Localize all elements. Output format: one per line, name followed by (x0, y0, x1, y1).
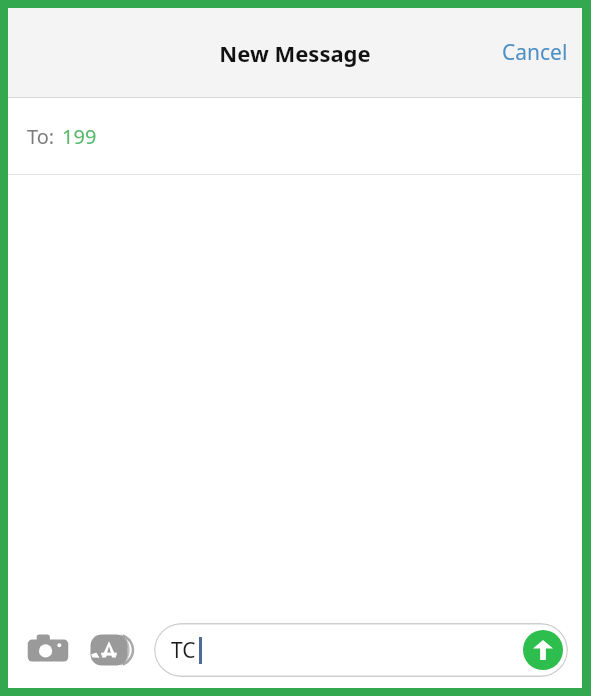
button[interactable]: Camera (22, 624, 74, 676)
button[interactable]: Cancel (488, 28, 582, 77)
staticText: To: (27, 123, 55, 150)
button[interactable]: App Store (86, 622, 142, 678)
staticText: 199 (62, 123, 97, 150)
button[interactable]: TC (154, 623, 568, 677)
staticText: TC (171, 636, 196, 665)
button[interactable]: Send (523, 630, 563, 670)
staticText: New Message (8, 38, 582, 68)
staticText: Cancel (502, 38, 568, 67)
button[interactable]: To: (8, 98, 582, 174)
